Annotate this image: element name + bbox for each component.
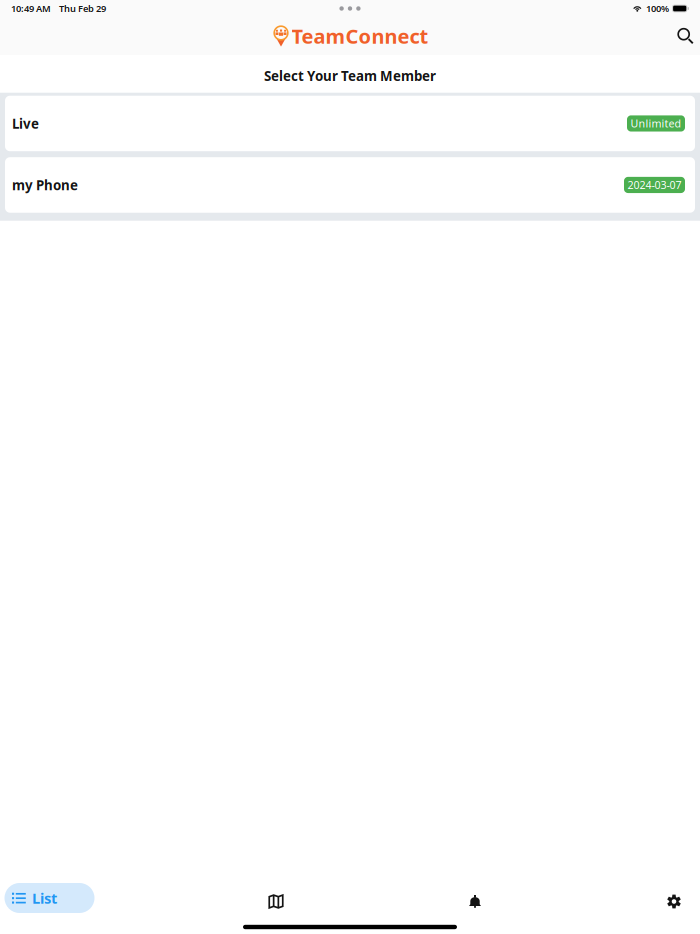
staticText: my Phone	[12, 176, 78, 194]
staticText: Thu Feb 29	[59, 2, 106, 15]
button[interactable]: Settings	[651, 881, 697, 915]
button[interactable]: my Phone	[5, 157, 695, 213]
staticText: TeamConnect	[291, 23, 428, 49]
button[interactable]: Map	[253, 881, 299, 915]
staticText: 10:49 AM	[11, 2, 51, 15]
button[interactable]: Live	[5, 96, 695, 151]
staticText: 2024-03-07	[627, 178, 681, 192]
staticText: Live	[12, 115, 39, 132]
button[interactable]: List	[4, 883, 94, 913]
staticText: List	[32, 888, 57, 908]
button[interactable]: Notifications	[452, 881, 498, 915]
staticText: Select Your Team Member	[264, 67, 436, 85]
staticText: Unlimited	[630, 116, 681, 131]
staticText: 100%	[646, 2, 669, 15]
button[interactable]: Search	[672, 22, 699, 49]
